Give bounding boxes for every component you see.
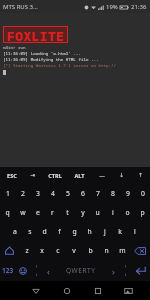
button[interactable]: ↑: [131, 167, 150, 184]
staticText: ESC: [7, 172, 17, 180]
staticText: o: [125, 208, 130, 217]
button[interactable]: x: [34, 241, 50, 260]
button[interactable]: i: [105, 203, 120, 222]
button[interactable]: z: [19, 241, 34, 260]
staticText: l: [134, 227, 136, 236]
button[interactable]: c: [50, 241, 66, 260]
button[interactable]: j: [97, 222, 112, 241]
button[interactable]: Emoji: [15, 260, 30, 281]
staticText: 7: [96, 189, 100, 198]
button[interactable]: ALT: [68, 167, 91, 184]
button[interactable]: 123: [0, 260, 15, 281]
button[interactable]: m: [114, 241, 130, 260]
staticText: [11:36:09] Loading 'a.html' ...: [3, 51, 81, 57]
staticText: t: [66, 208, 69, 217]
button[interactable]: Shift: [0, 241, 19, 260]
button[interactable]: d: [37, 222, 52, 241]
button[interactable]: Screenshot: [113, 281, 144, 300]
staticText: s: [28, 227, 32, 236]
button[interactable]: 4: [45, 184, 60, 203]
button[interactable]: p: [135, 203, 150, 222]
button[interactable]: o: [120, 203, 135, 222]
button[interactable]: s: [22, 222, 37, 241]
button[interactable]: f: [52, 222, 67, 241]
button[interactable]: h: [82, 222, 97, 241]
button[interactable]: y: [75, 203, 90, 222]
staticText: w: [20, 208, 26, 217]
button[interactable]: ⇥: [23, 167, 42, 184]
button[interactable]: a: [7, 222, 22, 241]
staticText: d: [42, 227, 47, 236]
button[interactable]: CTRL: [42, 167, 68, 184]
button[interactable]: u: [90, 203, 105, 222]
button[interactable]: 8: [105, 184, 120, 203]
staticText: ›: [112, 265, 115, 277]
staticText: c: [56, 246, 60, 255]
button[interactable]: Previous: [42, 260, 54, 281]
button[interactable]: FOXLITE: [3, 26, 68, 43]
button[interactable]: 5: [60, 184, 75, 203]
button[interactable]: g: [67, 222, 82, 241]
staticText: ALT: [74, 172, 85, 180]
staticText: h: [87, 227, 92, 236]
staticText: n: [104, 246, 109, 255]
button[interactable]: QWERTY: [54, 260, 107, 281]
staticText: 123: [2, 266, 14, 275]
staticText: [*] Starting Waitress 1.7.1 server on ht…: [3, 63, 147, 69]
staticText: q: [5, 208, 10, 217]
staticText: y: [81, 208, 85, 217]
staticText: f: [58, 227, 61, 236]
staticText: MTS RUS 3…: [3, 3, 38, 11]
staticText: ‹: [47, 265, 50, 277]
button[interactable]: Cursor keys: [119, 260, 131, 281]
button[interactable]: k: [112, 222, 127, 241]
button[interactable]: e: [30, 203, 45, 222]
staticText: z: [25, 246, 29, 255]
button[interactable]: n: [98, 241, 114, 260]
button[interactable]: 0: [135, 184, 150, 203]
button[interactable]: 3: [30, 184, 45, 203]
button[interactable]: Backspace: [130, 241, 150, 260]
staticText: v: [72, 246, 76, 255]
button[interactable]: 2: [15, 184, 30, 203]
staticText: m: [119, 246, 126, 255]
button[interactable]: v: [66, 241, 82, 260]
staticText: 19%: [106, 3, 118, 11]
staticText: ↓: [119, 172, 124, 179]
staticText: 21:36: [131, 3, 147, 11]
button[interactable]: Next: [107, 260, 119, 281]
button[interactable]: Back: [20, 281, 51, 300]
staticText: a: [13, 227, 17, 236]
button[interactable]: Home: [51, 281, 82, 300]
staticText: m4in> run: [3, 45, 26, 51]
button[interactable]: r: [45, 203, 60, 222]
button[interactable]: w: [15, 203, 30, 222]
staticText: ↑: [138, 172, 143, 179]
button[interactable]: l: [127, 222, 142, 241]
staticText: ⇥: [30, 172, 35, 179]
staticText: k: [118, 227, 122, 236]
staticText: 5: [66, 189, 70, 198]
button[interactable]: 6: [75, 184, 90, 203]
button[interactable]: —: [91, 167, 112, 184]
staticText: i: [112, 208, 114, 217]
button[interactable]: 9: [120, 184, 135, 203]
button[interactable]: ↓: [112, 167, 131, 184]
staticText: 9: [126, 189, 130, 198]
button[interactable]: q: [0, 203, 15, 222]
staticText: QWERTY: [66, 266, 96, 275]
staticText: 3: [36, 189, 40, 198]
button[interactable]: Enter: [131, 260, 150, 281]
staticText: e: [36, 208, 40, 217]
button[interactable]: Recent apps: [82, 281, 113, 300]
button[interactable]: 1: [0, 184, 15, 203]
staticText: u: [95, 208, 100, 217]
button[interactable]: Cursor keys: [30, 260, 42, 281]
button[interactable]: 7: [90, 184, 105, 203]
button[interactable]: ESC: [0, 167, 23, 184]
staticText: —: [99, 172, 105, 180]
staticText: 2: [21, 189, 25, 198]
button[interactable]: t: [60, 203, 75, 222]
button[interactable]: b: [82, 241, 98, 260]
staticText: j: [104, 227, 106, 236]
